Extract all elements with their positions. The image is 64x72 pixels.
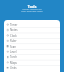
button[interactable]: Clock: [4, 33, 60, 38]
staticText: Level: [10, 50, 17, 54]
button[interactable]: Units: [4, 65, 60, 70]
staticText: your everyday tasks: [4, 10, 60, 13]
button[interactable]: Ruler: [4, 38, 60, 43]
button[interactable]: Notes: [4, 27, 60, 32]
staticText: Torch: [10, 55, 17, 59]
staticText: Tools: [0, 4, 64, 9]
staticText: Clock: [10, 34, 17, 38]
button[interactable]: Scan: [4, 44, 60, 49]
staticText: Ruler: [10, 39, 17, 43]
staticText: Handy utilities for: [4, 8, 60, 11]
staticText: Notes: [10, 28, 18, 32]
button[interactable]: Torch: [4, 54, 60, 59]
button[interactable]: Level: [4, 49, 60, 54]
staticText: Maps: [10, 61, 17, 65]
button[interactable]: Timer: [4, 22, 60, 27]
staticText: Scan: [10, 45, 16, 49]
button[interactable]: Maps: [4, 60, 60, 65]
staticText: Units: [10, 66, 17, 70]
staticText: Timer: [10, 23, 18, 27]
